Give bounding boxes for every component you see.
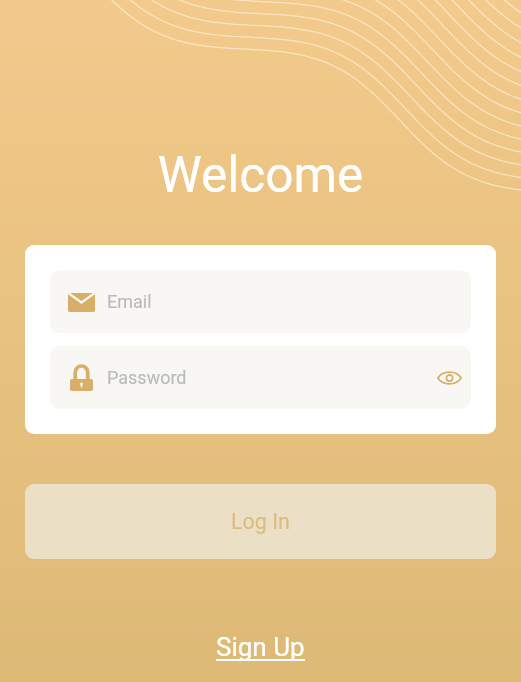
button[interactable]: Password <box>50 346 471 409</box>
button[interactable]: Sign Up <box>204 624 317 672</box>
staticText: Log In <box>231 509 290 534</box>
button[interactable]: Log In <box>25 484 496 559</box>
staticText: Sign Up <box>216 632 305 662</box>
staticText: Email <box>107 291 152 312</box>
staticText: Password <box>107 367 187 388</box>
button[interactable]: Show password <box>427 356 471 400</box>
staticText: Welcome <box>0 146 521 204</box>
button[interactable]: Email <box>50 270 471 333</box>
